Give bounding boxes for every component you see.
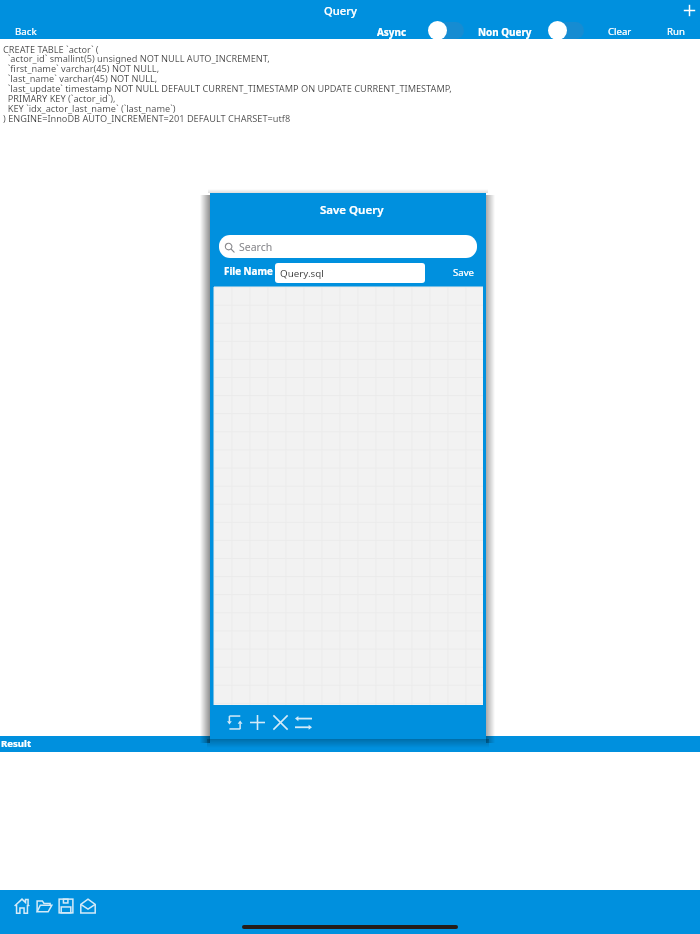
button[interactable]: Run — [667, 25, 685, 38]
button[interactable]: Clear — [608, 25, 632, 38]
button[interactable]: Refresh — [226, 714, 243, 731]
button[interactable]: Delete — [272, 714, 289, 731]
staticText: Result — [1, 737, 32, 750]
button[interactable]: Back — [15, 25, 37, 38]
staticText: Save Query — [320, 202, 384, 218]
button[interactable]: Save — [453, 266, 474, 279]
button[interactable]: Search — [219, 235, 477, 258]
button[interactable]: Query.sql — [275, 263, 425, 283]
staticText: Query — [324, 3, 357, 18]
button[interactable]: Toggle — [428, 21, 464, 40]
staticText: CREATE TABLE `actor` ( `actor_id` smalli… — [3, 43, 452, 125]
button[interactable]: Non Query — [478, 25, 532, 38]
button[interactable]: Transfer — [295, 714, 312, 731]
staticText: Search — [239, 240, 273, 254]
button[interactable]: File Name — [224, 265, 273, 278]
button[interactable]: Add — [682, 3, 697, 18]
button[interactable]: Async — [377, 25, 406, 38]
staticText: Query.sql — [280, 267, 324, 280]
button[interactable]: Save — [58, 898, 74, 914]
button[interactable]: Open — [36, 898, 52, 914]
button[interactable]: Mail — [80, 898, 96, 914]
button[interactable]: Toggle — [548, 21, 584, 40]
button[interactable]: Home — [14, 898, 30, 914]
button[interactable]: Add — [249, 714, 266, 731]
